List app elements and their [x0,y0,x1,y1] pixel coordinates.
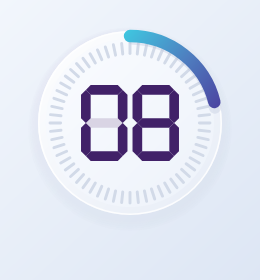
button[interactable]: Timer 08 [0,0,260,280]
